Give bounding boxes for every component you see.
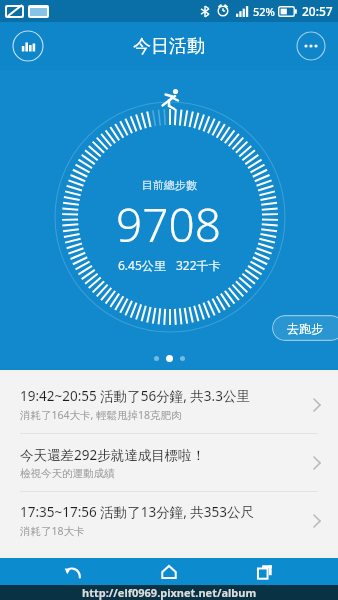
staticText: 6.45公里	[118, 257, 166, 273]
button[interactable]: Statistics	[12, 30, 44, 62]
button[interactable]: More options	[296, 31, 326, 61]
button[interactable]: 17:35~17:56 活動了13分鐘, 共353公尺	[0, 492, 338, 549]
staticText: 今天還差292步就達成目標啦！	[20, 446, 206, 464]
staticText: 消耗了164大卡, 輕鬆甩掉18克肥肉	[20, 408, 182, 422]
button[interactable]: Recent apps	[242, 558, 288, 585]
staticText: 9708	[116, 193, 222, 256]
staticText: 52%	[253, 4, 275, 19]
staticText: 322千卡	[176, 257, 221, 273]
staticText: http://elf0969.pixnet.net/album	[82, 585, 257, 600]
staticText: 今日活動	[133, 35, 205, 58]
staticText: 20:57	[302, 3, 333, 19]
button[interactable]: 去跑步	[272, 315, 338, 341]
button[interactable]: 19:42~20:55 活動了56分鐘, 共3.3公里	[0, 376, 338, 433]
staticText: 去跑步	[287, 321, 323, 336]
staticText: 目前總步數	[142, 178, 197, 192]
staticText: 消耗了18大卡	[20, 524, 85, 538]
button[interactable]: 今天還差292步就達成目標啦！	[0, 434, 338, 491]
staticText: 19:42~20:55 活動了56分鐘, 共3.3公里	[20, 387, 250, 405]
button[interactable]: Home	[146, 558, 192, 585]
staticText: 17:35~17:56 活動了13分鐘, 共353公尺	[20, 503, 254, 521]
staticText: 檢視今天的運動成績	[20, 467, 115, 480]
button[interactable]: Back	[50, 558, 96, 585]
